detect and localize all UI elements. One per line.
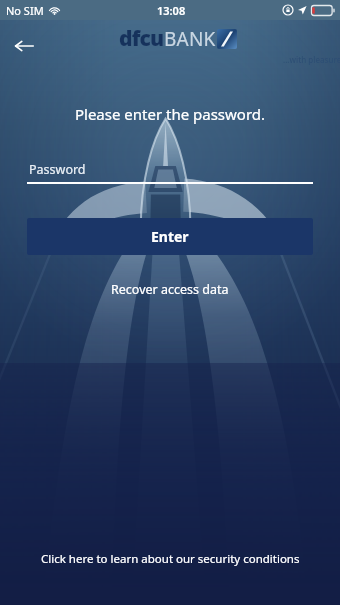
staticText: BANK [164,26,216,52]
staticText: dfcu [119,24,164,53]
staticText: Enter [151,227,189,246]
button[interactable]: Back [6,28,42,64]
staticText: 13:08 [157,3,186,18]
button[interactable]: Click here to learn about our security c… [27,545,314,573]
staticText: Password [29,161,86,178]
button[interactable]: Enter [27,218,313,255]
staticText: Click here to learn about our security c… [41,551,300,567]
staticText: Please enter the password. [0,104,340,124]
button[interactable]: Recover access data [99,277,241,302]
staticText: No SIM [6,3,44,18]
button[interactable]: Password [27,157,313,182]
staticText: ...with pleasure [283,54,340,65]
staticText: Recover access data [111,281,229,298]
